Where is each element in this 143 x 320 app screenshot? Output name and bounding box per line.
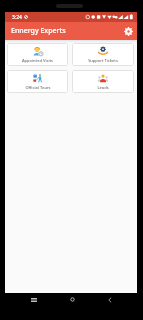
staticText: Official Tours	[25, 85, 51, 90]
button[interactable]: Support Tickets	[72, 43, 134, 66]
staticText: Leads	[97, 85, 109, 90]
staticText: Support Tickets	[88, 58, 118, 63]
staticText: Ennergy Experts	[11, 26, 66, 36]
button[interactable]: Recents	[14, 293, 53, 306]
staticText: 3:24	[12, 14, 22, 21]
staticText: Appointed Visits	[22, 58, 53, 63]
button[interactable]: Official Tours	[7, 70, 68, 93]
button[interactable]: Leads	[72, 70, 134, 93]
button[interactable]: Home	[53, 293, 91, 306]
button[interactable]: Settings	[122, 25, 135, 38]
button[interactable]: Appointed Visits	[7, 43, 68, 66]
button[interactable]: Back	[91, 293, 129, 306]
